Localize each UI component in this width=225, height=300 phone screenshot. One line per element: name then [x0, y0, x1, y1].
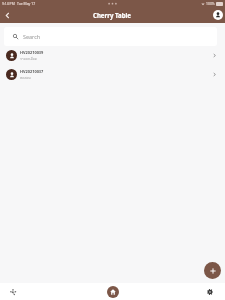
button[interactable]: HV20210037 [0, 65, 225, 84]
button[interactable]: Search [4, 27, 217, 46]
staticText: รายละเอียด [20, 56, 37, 61]
staticText: Tue May 17 [17, 1, 36, 6]
button[interactable]: Add [204, 262, 221, 279]
button[interactable]: Account [210, 7, 225, 23]
button[interactable]: Home [100, 283, 126, 300]
button[interactable]: Back [0, 7, 14, 23]
button[interactable]: Settings [197, 283, 223, 300]
staticText: 100% [206, 1, 215, 6]
staticText: Search [23, 33, 41, 40]
button[interactable]: Scan [0, 283, 26, 300]
staticText: HV20210037 [20, 69, 44, 74]
staticText: 9:14 PM [2, 1, 15, 6]
staticText: HV20210039 [20, 50, 44, 55]
staticText: ทดสอบ [20, 75, 31, 80]
button[interactable]: HV20210039 [0, 46, 225, 65]
staticText: Cherry Table [93, 11, 132, 19]
